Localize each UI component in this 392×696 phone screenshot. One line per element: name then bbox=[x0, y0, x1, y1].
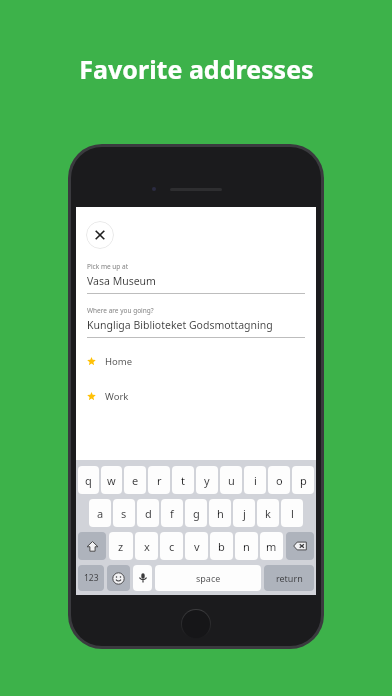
button[interactable]: Close bbox=[86, 221, 114, 249]
button[interactable]: i bbox=[244, 466, 266, 494]
staticText: w bbox=[107, 473, 116, 488]
button[interactable]: c bbox=[160, 532, 183, 560]
staticText: z bbox=[118, 539, 124, 554]
staticText: Kungliga Biblioteket Godsmottagning bbox=[87, 318, 273, 332]
button[interactable]: z bbox=[109, 532, 133, 560]
button[interactable]: t bbox=[172, 466, 194, 494]
button[interactable]: u bbox=[220, 466, 242, 494]
button[interactable]: l bbox=[281, 499, 303, 527]
button[interactable]: v bbox=[185, 532, 208, 560]
button[interactable]: y bbox=[196, 466, 218, 494]
staticText: p bbox=[300, 473, 307, 488]
button[interactable]: d bbox=[137, 499, 159, 527]
staticText: o bbox=[276, 473, 283, 488]
button[interactable]: f bbox=[161, 499, 183, 527]
staticText: q bbox=[85, 473, 92, 488]
staticText: Pick me up at bbox=[87, 262, 129, 271]
staticText: d bbox=[145, 506, 152, 521]
staticText: b bbox=[218, 539, 225, 554]
button[interactable]: 123 bbox=[78, 565, 104, 591]
button[interactable]: return bbox=[264, 565, 314, 591]
staticText: i bbox=[254, 473, 257, 488]
staticText: Where are you going? bbox=[87, 306, 154, 315]
button[interactable]: Home bbox=[76, 355, 316, 368]
staticText: l bbox=[291, 506, 294, 521]
staticText: Favorite addresses bbox=[79, 52, 314, 86]
button[interactable]: Dictate bbox=[133, 565, 152, 591]
staticText: y bbox=[204, 473, 210, 488]
staticText: u bbox=[228, 473, 235, 488]
button[interactable]: k bbox=[257, 499, 279, 527]
button[interactable]: space bbox=[155, 565, 261, 591]
button[interactable]: Emoji bbox=[107, 565, 130, 591]
staticText: g bbox=[193, 506, 200, 521]
staticText: Vasa Museum bbox=[87, 274, 156, 288]
staticText: 123 bbox=[84, 572, 99, 584]
button[interactable]: p bbox=[292, 466, 314, 494]
staticText: r bbox=[157, 473, 162, 488]
staticText: n bbox=[243, 539, 250, 554]
button[interactable]: s bbox=[113, 499, 135, 527]
button[interactable]: r bbox=[148, 466, 170, 494]
staticText: s bbox=[121, 506, 127, 521]
button[interactable]: Work bbox=[76, 390, 316, 403]
button[interactable]: Backspace bbox=[286, 532, 314, 560]
button[interactable]: m bbox=[260, 532, 283, 560]
button[interactable]: e bbox=[124, 466, 146, 494]
staticText: space bbox=[196, 572, 221, 584]
staticText: e bbox=[132, 473, 139, 488]
button[interactable]: j bbox=[233, 499, 255, 527]
staticText: v bbox=[194, 539, 200, 554]
button[interactable]: o bbox=[268, 466, 290, 494]
staticText: f bbox=[170, 506, 174, 521]
staticText: k bbox=[265, 506, 271, 521]
staticText: x bbox=[144, 539, 150, 554]
button[interactable]: g bbox=[185, 499, 207, 527]
staticText: a bbox=[97, 506, 104, 521]
staticText: return bbox=[276, 572, 303, 584]
staticText: m bbox=[266, 539, 277, 554]
staticText: h bbox=[217, 506, 224, 521]
staticText: Home bbox=[105, 355, 133, 368]
button[interactable]: Shift bbox=[78, 532, 106, 560]
button[interactable]: a bbox=[89, 499, 111, 527]
staticText: c bbox=[169, 539, 175, 554]
button[interactable]: q bbox=[78, 466, 99, 494]
other: Home button bbox=[181, 609, 211, 639]
staticText: Work bbox=[105, 390, 129, 403]
button[interactable]: n bbox=[235, 532, 258, 560]
button[interactable]: b bbox=[210, 532, 233, 560]
button[interactable]: w bbox=[101, 466, 122, 494]
button[interactable]: h bbox=[209, 499, 231, 527]
staticText: j bbox=[243, 506, 246, 521]
button[interactable]: x bbox=[135, 532, 158, 560]
staticText: t bbox=[181, 473, 185, 488]
